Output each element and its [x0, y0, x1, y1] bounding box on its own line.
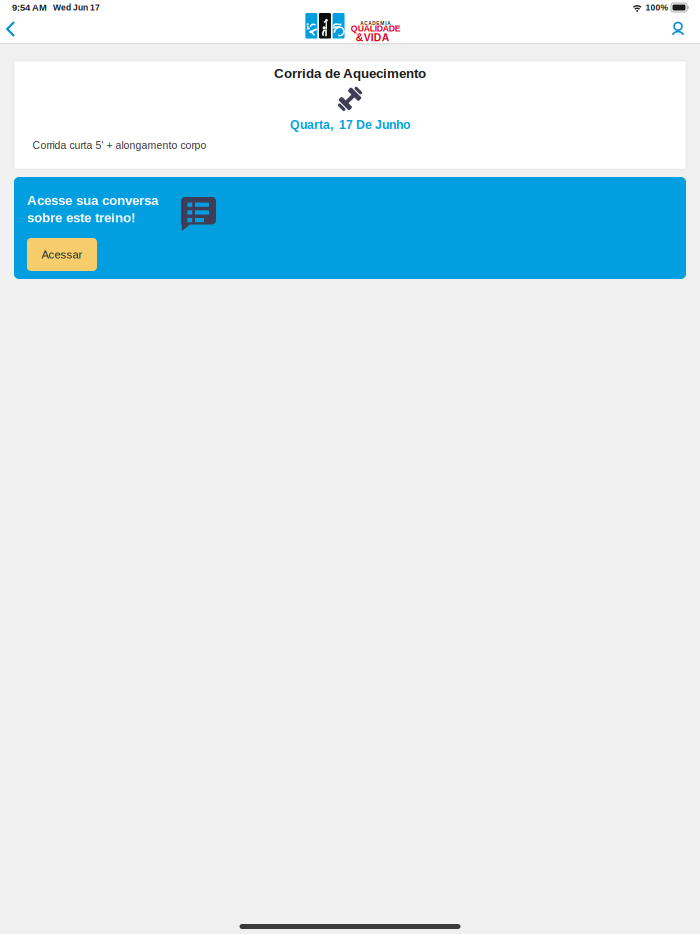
staticText: Quarta, 17 De Junho — [290, 118, 410, 132]
staticText: sobre este treino! — [27, 210, 135, 225]
staticText: SEU CORPO EM FORMA CONSTANTE — [358, 42, 388, 45]
button[interactable]: Acessar — [27, 238, 97, 271]
button[interactable]: Back — [0, 15, 32, 43]
staticText: Acesse sua conversa — [27, 193, 158, 208]
staticText: QUALIDADE — [351, 24, 401, 33]
staticText: Acessar — [41, 248, 82, 261]
staticText: Corrida curta 5' + alongamento corpo — [32, 140, 206, 151]
staticText: Wed Jun 17 — [53, 3, 100, 12]
button[interactable]: Profile — [656, 15, 700, 43]
staticText: Corrida de Aquecimento — [274, 66, 426, 81]
staticText: 100% — [645, 3, 668, 12]
staticText: A C A D E M I A — [360, 21, 390, 26]
staticText: 9:54 AM — [12, 2, 47, 13]
staticText: &VIDA — [356, 32, 390, 43]
